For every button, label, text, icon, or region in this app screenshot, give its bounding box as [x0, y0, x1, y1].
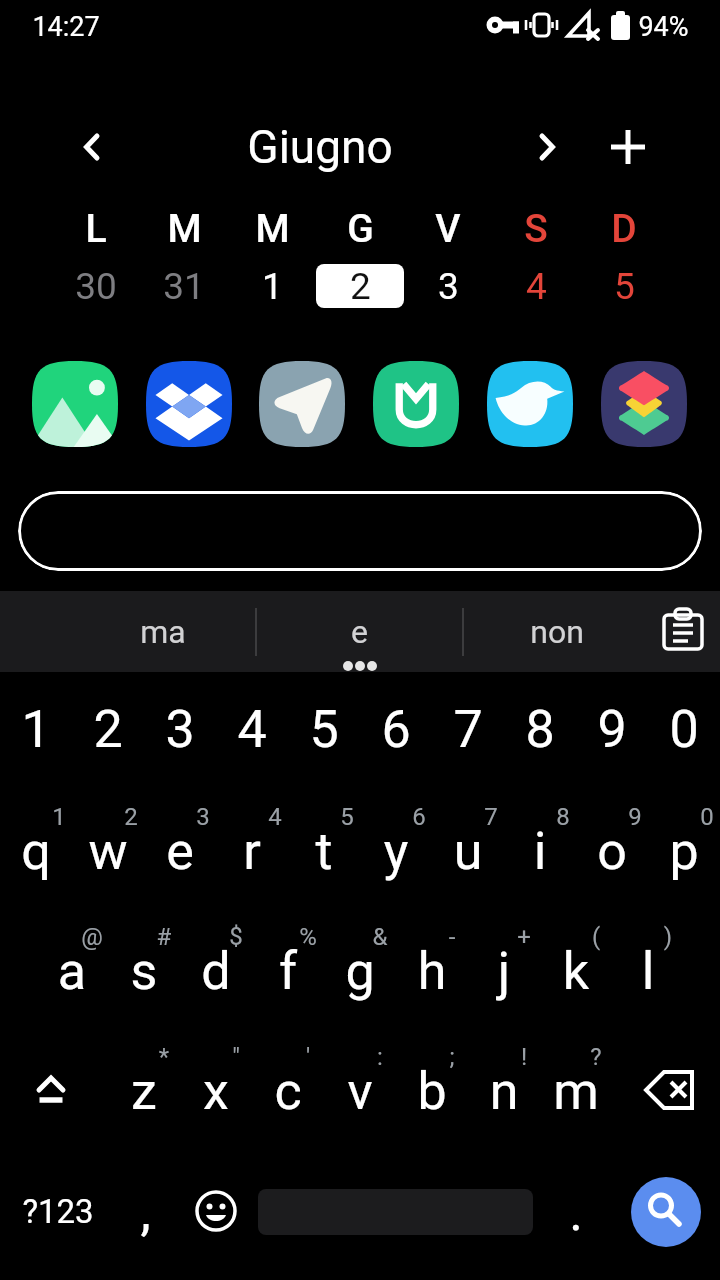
- button[interactable]: Dropbox: [145, 360, 233, 448]
- button[interactable]: 1: [0, 795, 72, 905]
- staticText: a: [36, 941, 108, 1002]
- button[interactable]: 7: [432, 672, 504, 788]
- button[interactable]: 1: [228, 262, 316, 310]
- button[interactable]: ?: [540, 1035, 612, 1145]
- button[interactable]: &: [324, 915, 396, 1025]
- button[interactable]: 30: [52, 262, 140, 310]
- button[interactable]: #: [108, 915, 180, 1025]
- staticText: 7: [453, 699, 483, 760]
- button[interactable]: 2: [316, 262, 404, 310]
- button[interactable]: ,: [110, 1156, 180, 1266]
- button[interactable]: ": [180, 1035, 252, 1145]
- staticText: v: [324, 1061, 396, 1122]
- staticText: 9: [597, 699, 627, 760]
- button[interactable]: ;: [396, 1035, 468, 1145]
- button[interactable]: Emoji: [182, 1156, 250, 1266]
- staticText: &: [368, 923, 392, 951]
- staticText: 5: [614, 265, 635, 308]
- staticText: @: [80, 923, 104, 951]
- button[interactable]: *: [108, 1035, 180, 1145]
- button[interactable]: Telegram: [258, 360, 346, 448]
- button[interactable]: !: [468, 1035, 540, 1145]
- staticText: 0: [695, 803, 719, 831]
- button[interactable]: Mi Home: [372, 360, 460, 448]
- button[interactable]: non: [463, 591, 648, 672]
- button[interactable]: 8: [504, 672, 576, 788]
- staticText: 4: [237, 699, 267, 760]
- button[interactable]: 31: [140, 262, 228, 310]
- staticText: 8: [525, 699, 555, 760]
- button[interactable]: Backspace: [633, 1035, 705, 1143]
- button[interactable]: Search field: [18, 491, 702, 571]
- staticText: 5: [309, 699, 339, 760]
- staticText: ;: [440, 1043, 464, 1071]
- button[interactable]: Add event: [598, 118, 658, 176]
- staticText: 0: [669, 699, 699, 760]
- staticText: 2: [350, 265, 371, 308]
- button[interactable]: e: [256, 591, 463, 672]
- staticText: Giugno: [160, 120, 480, 174]
- button[interactable]: 9: [576, 795, 648, 905]
- button[interactable]: ?123: [12, 1156, 104, 1266]
- button[interactable]: ma: [0, 591, 256, 672]
- staticText: y: [360, 821, 432, 882]
- button[interactable]: 8: [504, 795, 576, 905]
- button[interactable]: (: [540, 915, 612, 1025]
- staticText: M: [167, 206, 202, 252]
- staticText: V: [435, 206, 461, 252]
- button[interactable]: Search: [631, 1177, 701, 1247]
- staticText: 7: [479, 803, 503, 831]
- button[interactable]: @: [36, 915, 108, 1025]
- staticText: 6: [407, 803, 431, 831]
- button[interactable]: +: [468, 915, 540, 1025]
- button[interactable]: 2: [72, 795, 144, 905]
- button[interactable]: Shift: [15, 1035, 87, 1143]
- staticText: (: [584, 923, 608, 951]
- button[interactable]: 3: [144, 672, 216, 788]
- button[interactable]: $: [180, 915, 252, 1025]
- staticText: i: [504, 821, 576, 882]
- button[interactable]: ': [252, 1035, 324, 1145]
- staticText: ?123: [22, 1192, 94, 1231]
- staticText: w: [72, 821, 144, 882]
- staticText: 1: [47, 803, 71, 831]
- staticText: 1: [262, 265, 283, 308]
- button[interactable]: Files: [600, 360, 688, 448]
- staticText: o: [576, 821, 648, 882]
- button[interactable]: 3: [404, 262, 492, 310]
- button[interactable]: Next month: [517, 118, 577, 176]
- button[interactable]: Previous month: [62, 118, 122, 176]
- staticText: b: [396, 1061, 468, 1122]
- staticText: r: [216, 821, 288, 882]
- button[interactable]: 3: [144, 795, 216, 905]
- staticText: G: [347, 206, 374, 252]
- staticText: 5: [335, 803, 359, 831]
- button[interactable]: 6: [360, 795, 432, 905]
- staticText: %: [296, 923, 320, 951]
- button[interactable]: 0: [648, 795, 720, 905]
- button[interactable]: ): [612, 915, 684, 1025]
- button[interactable]: 7: [432, 795, 504, 905]
- button[interactable]: Twitter: [486, 360, 574, 448]
- staticText: !: [512, 1043, 536, 1071]
- button[interactable]: 0: [648, 672, 720, 788]
- button[interactable]: 4: [492, 262, 580, 310]
- button[interactable]: 4: [216, 672, 288, 788]
- button[interactable]: 4: [216, 795, 288, 905]
- button[interactable]: 2: [72, 672, 144, 788]
- button[interactable]: 1: [0, 672, 72, 788]
- button[interactable]: %: [252, 915, 324, 1025]
- button[interactable]: -: [396, 915, 468, 1025]
- button[interactable]: :: [324, 1035, 396, 1145]
- button[interactable]: Gallery: [31, 360, 119, 448]
- button[interactable]: 5: [288, 672, 360, 788]
- button[interactable]: 5: [288, 795, 360, 905]
- button[interactable]: 5: [580, 262, 668, 310]
- staticText: #: [152, 923, 176, 951]
- button[interactable]: 6: [360, 672, 432, 788]
- button[interactable]: .: [542, 1156, 610, 1266]
- button[interactable]: Clipboard: [646, 591, 720, 665]
- button[interactable]: 9: [576, 672, 648, 788]
- staticText: ): [656, 923, 680, 951]
